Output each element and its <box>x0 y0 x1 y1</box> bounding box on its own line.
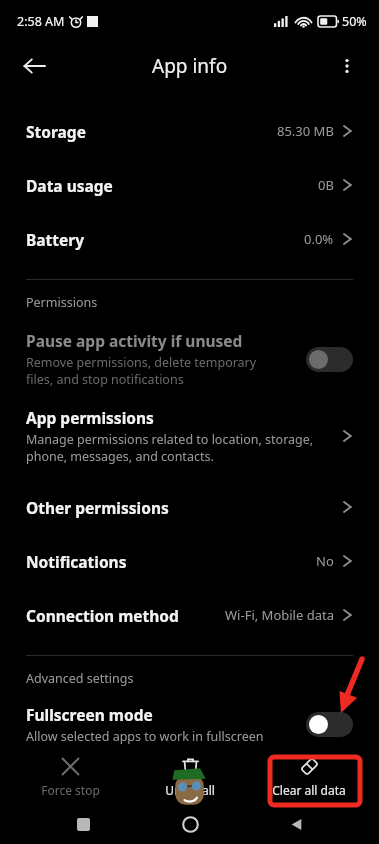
staticText: App permissions <box>26 407 154 428</box>
button[interactable]: Back <box>14 46 54 86</box>
staticText: Clear all data <box>272 782 346 798</box>
button[interactable]: More options <box>327 46 367 86</box>
staticText: App info <box>152 53 228 79</box>
staticText: Fullscreen mode <box>26 704 153 725</box>
button[interactable]: Notifications <box>0 534 379 588</box>
staticText: Storage <box>26 121 86 142</box>
staticText: 85.30 MB <box>277 122 334 140</box>
staticText: Manage permissions related to location, … <box>26 431 314 448</box>
button[interactable]: Clear all data <box>254 752 364 802</box>
staticText: Remove permissions, delete temporary <box>26 354 257 371</box>
staticText: Other permissions <box>26 497 169 518</box>
button[interactable]: Connection method <box>0 588 379 642</box>
staticText: Force stop <box>41 782 100 798</box>
button[interactable]: Pause app activity if unused <box>0 324 379 394</box>
staticText: Data usage <box>26 175 113 196</box>
button[interactable]: Home <box>166 805 214 844</box>
button[interactable]: Toggle <box>306 347 353 372</box>
staticText: 2:58 AM <box>17 13 65 30</box>
staticText: Battery <box>26 229 85 250</box>
staticText: Pause app activity if unused <box>26 330 243 351</box>
staticText: 0.0% <box>304 230 334 248</box>
staticText: Permissions <box>26 294 98 311</box>
staticText: 0B <box>318 176 334 194</box>
staticText: Allow selected apps to work in fullscree… <box>26 728 264 745</box>
staticText: Wi-Fi, Mobile data <box>225 606 334 624</box>
button[interactable]: Toggle <box>306 712 353 737</box>
staticText: 50% <box>342 13 367 30</box>
staticText: Connection method <box>26 605 179 626</box>
button[interactable]: Uninstall <box>135 752 245 802</box>
staticText: Uninstall <box>165 782 215 798</box>
staticText: phone, messages, and contacts. <box>26 448 214 465</box>
button[interactable]: Force stop <box>15 752 125 802</box>
button[interactable]: Other permissions <box>0 480 379 534</box>
button[interactable]: Data usage <box>0 158 379 212</box>
button[interactable]: Recents <box>59 805 107 844</box>
staticText: files, and stop notifications <box>26 371 184 388</box>
button[interactable]: Fullscreen mode <box>0 700 379 749</box>
button[interactable]: Battery <box>0 212 379 266</box>
staticText: No <box>316 552 334 570</box>
staticText: Notifications <box>26 551 127 572</box>
staticText: Advanced settings <box>26 670 134 687</box>
button[interactable]: Back <box>272 805 320 844</box>
button[interactable]: App permissions <box>0 404 379 468</box>
button[interactable]: Storage <box>0 104 379 158</box>
